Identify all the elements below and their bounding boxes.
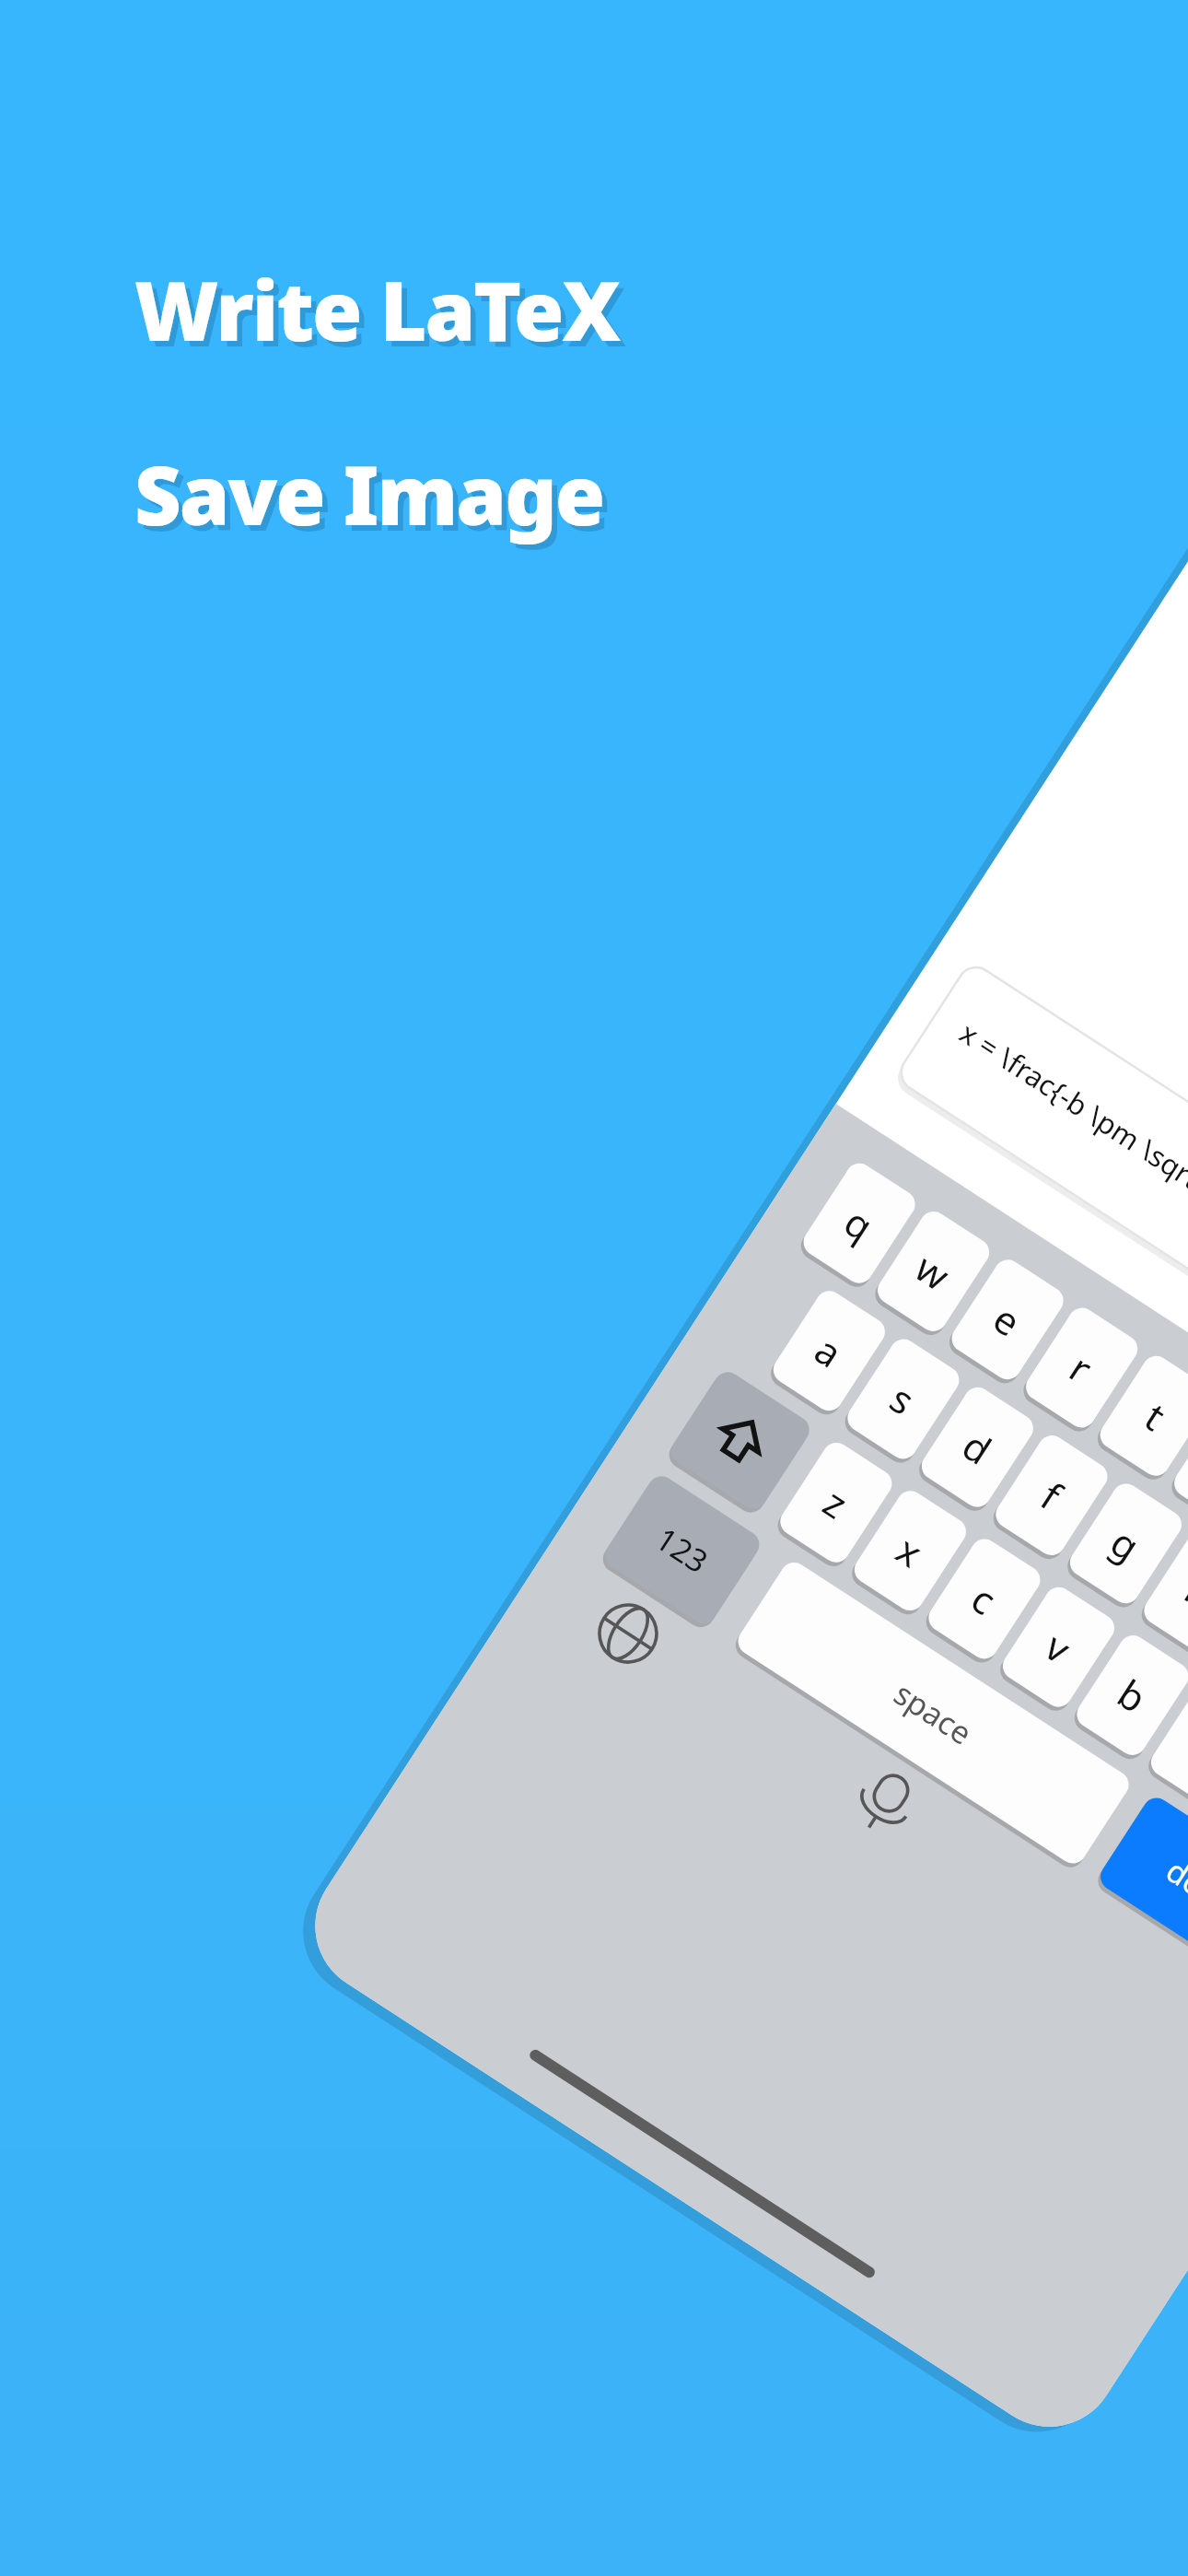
button[interactable]: Write LaTeX Save Image promotional scree… <box>0 0 1188 2576</box>
